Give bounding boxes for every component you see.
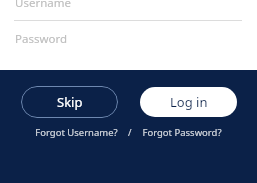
staticText: Forgot Password? xyxy=(142,126,222,139)
staticText: Log in xyxy=(170,93,208,111)
button[interactable]: Log in xyxy=(140,87,237,117)
staticText: Username xyxy=(15,0,71,11)
staticText: Forgot Username? xyxy=(35,126,118,139)
staticText: / xyxy=(128,126,132,139)
button[interactable]: Skip xyxy=(21,86,118,118)
staticText: Skip xyxy=(57,93,83,111)
staticText: Password xyxy=(15,31,68,47)
button[interactable]: Forgot Password? xyxy=(138,124,226,141)
button[interactable]: Forgot Username? xyxy=(31,124,122,141)
